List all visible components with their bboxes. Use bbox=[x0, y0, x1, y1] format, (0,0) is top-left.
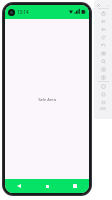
button[interactable]: Volume down bbox=[94, 25, 112, 33]
button[interactable]: Rotate left bbox=[94, 33, 112, 41]
button[interactable]: Resize bbox=[94, 82, 112, 90]
button[interactable]: Recent apps bbox=[61, 179, 89, 193]
button[interactable]: Fold bbox=[94, 73, 112, 81]
button[interactable]: Power bbox=[94, 9, 112, 17]
button[interactable]: Rotate right bbox=[94, 41, 112, 49]
button[interactable]: Volume up bbox=[94, 17, 112, 25]
button[interactable]: Close bbox=[96, 3, 100, 7]
button[interactable]: Back bbox=[94, 65, 112, 73]
button[interactable]: Zoom bbox=[94, 57, 112, 65]
button[interactable]: Take screenshot bbox=[94, 49, 112, 57]
staticText: Safe Area bbox=[38, 97, 56, 102]
button[interactable]: Home bbox=[33, 179, 61, 193]
button[interactable]: More options bbox=[106, 3, 110, 7]
button[interactable]: Settings bbox=[94, 98, 112, 106]
staticText: 13:14 bbox=[17, 9, 29, 15]
button[interactable]: Back bbox=[5, 179, 33, 193]
button[interactable]: Display bbox=[94, 90, 112, 98]
